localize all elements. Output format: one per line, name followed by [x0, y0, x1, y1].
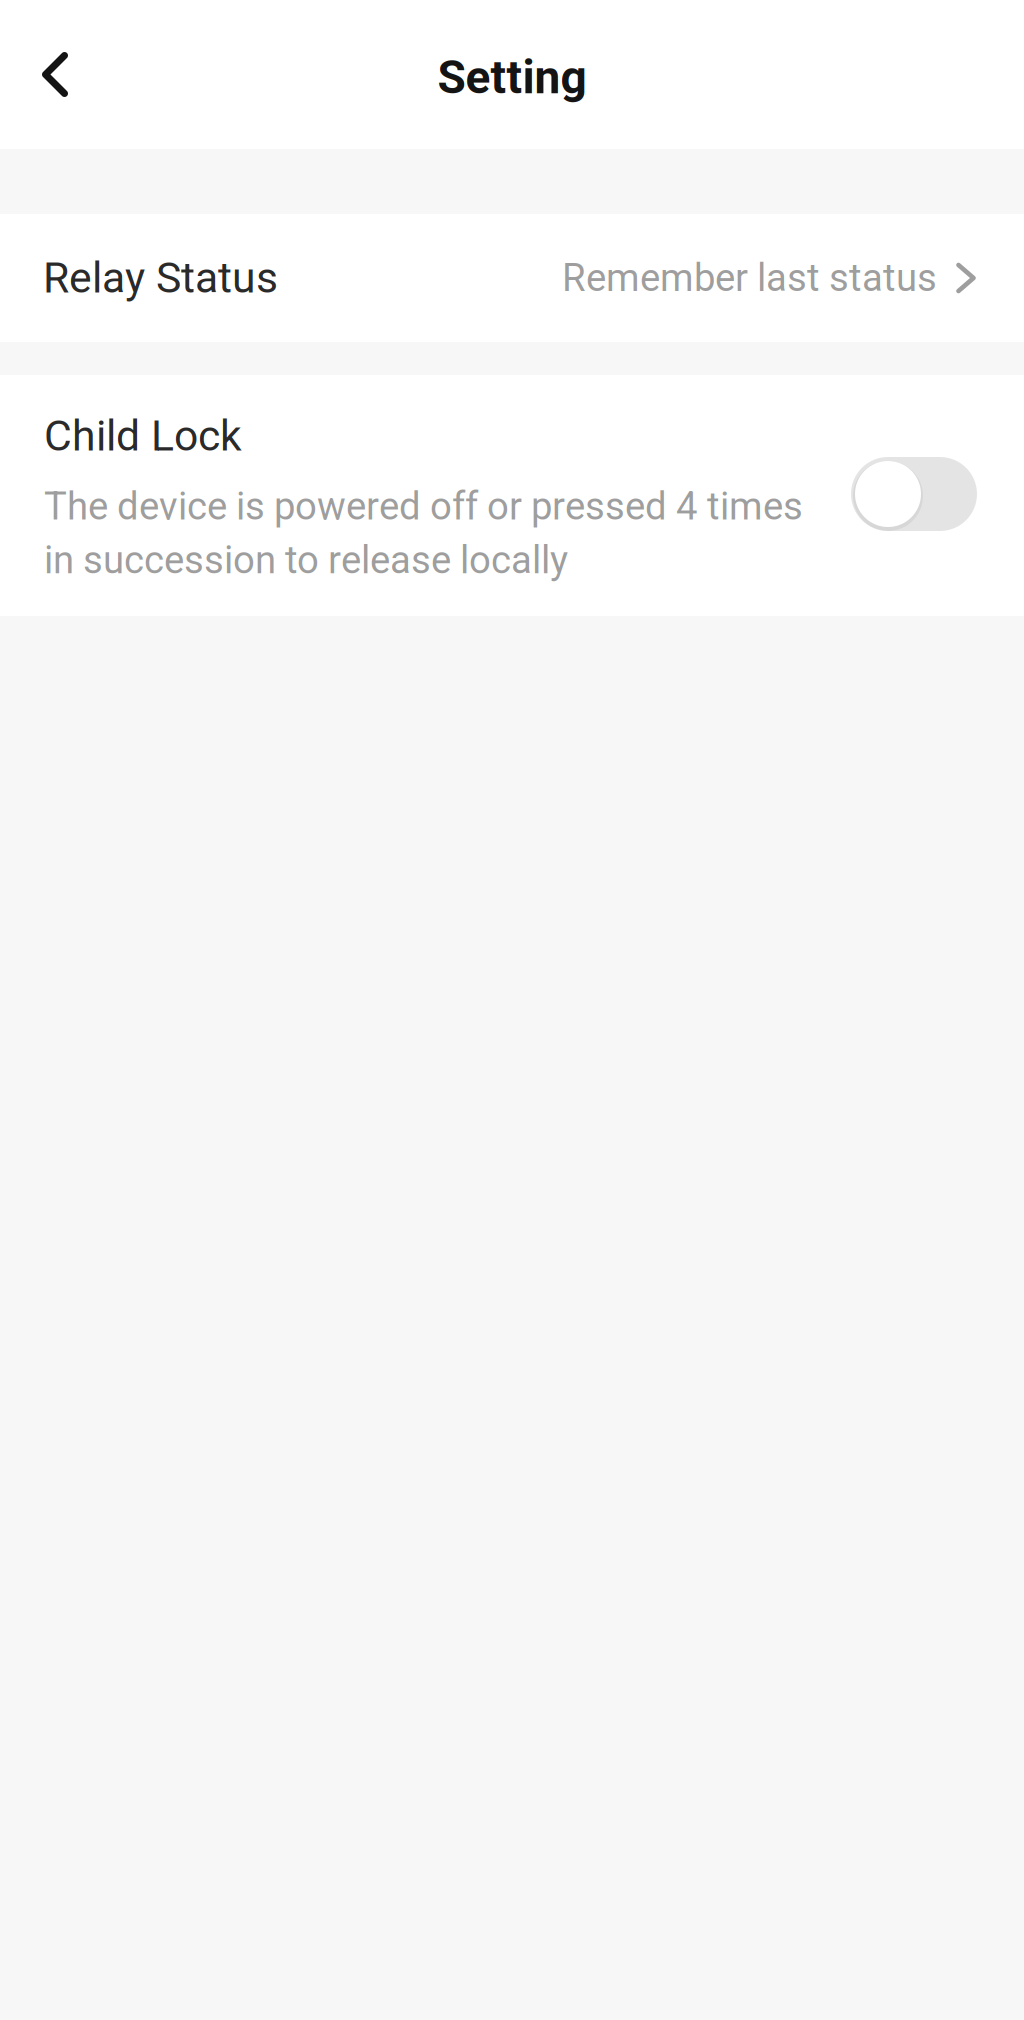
staticText: Setting	[437, 50, 586, 104]
staticText: Child Lock	[44, 411, 242, 461]
staticText: Relay Status	[43, 253, 278, 303]
staticText: The device is powered off or pressed 4 t…	[44, 484, 803, 529]
staticText: in succession to release locally	[44, 538, 568, 583]
button[interactable]: Back	[0, 9, 120, 139]
staticText: Remember last status	[562, 256, 937, 300]
button[interactable]: Child Lock	[851, 457, 977, 531]
button[interactable]: Relay Status	[0, 214, 1024, 342]
